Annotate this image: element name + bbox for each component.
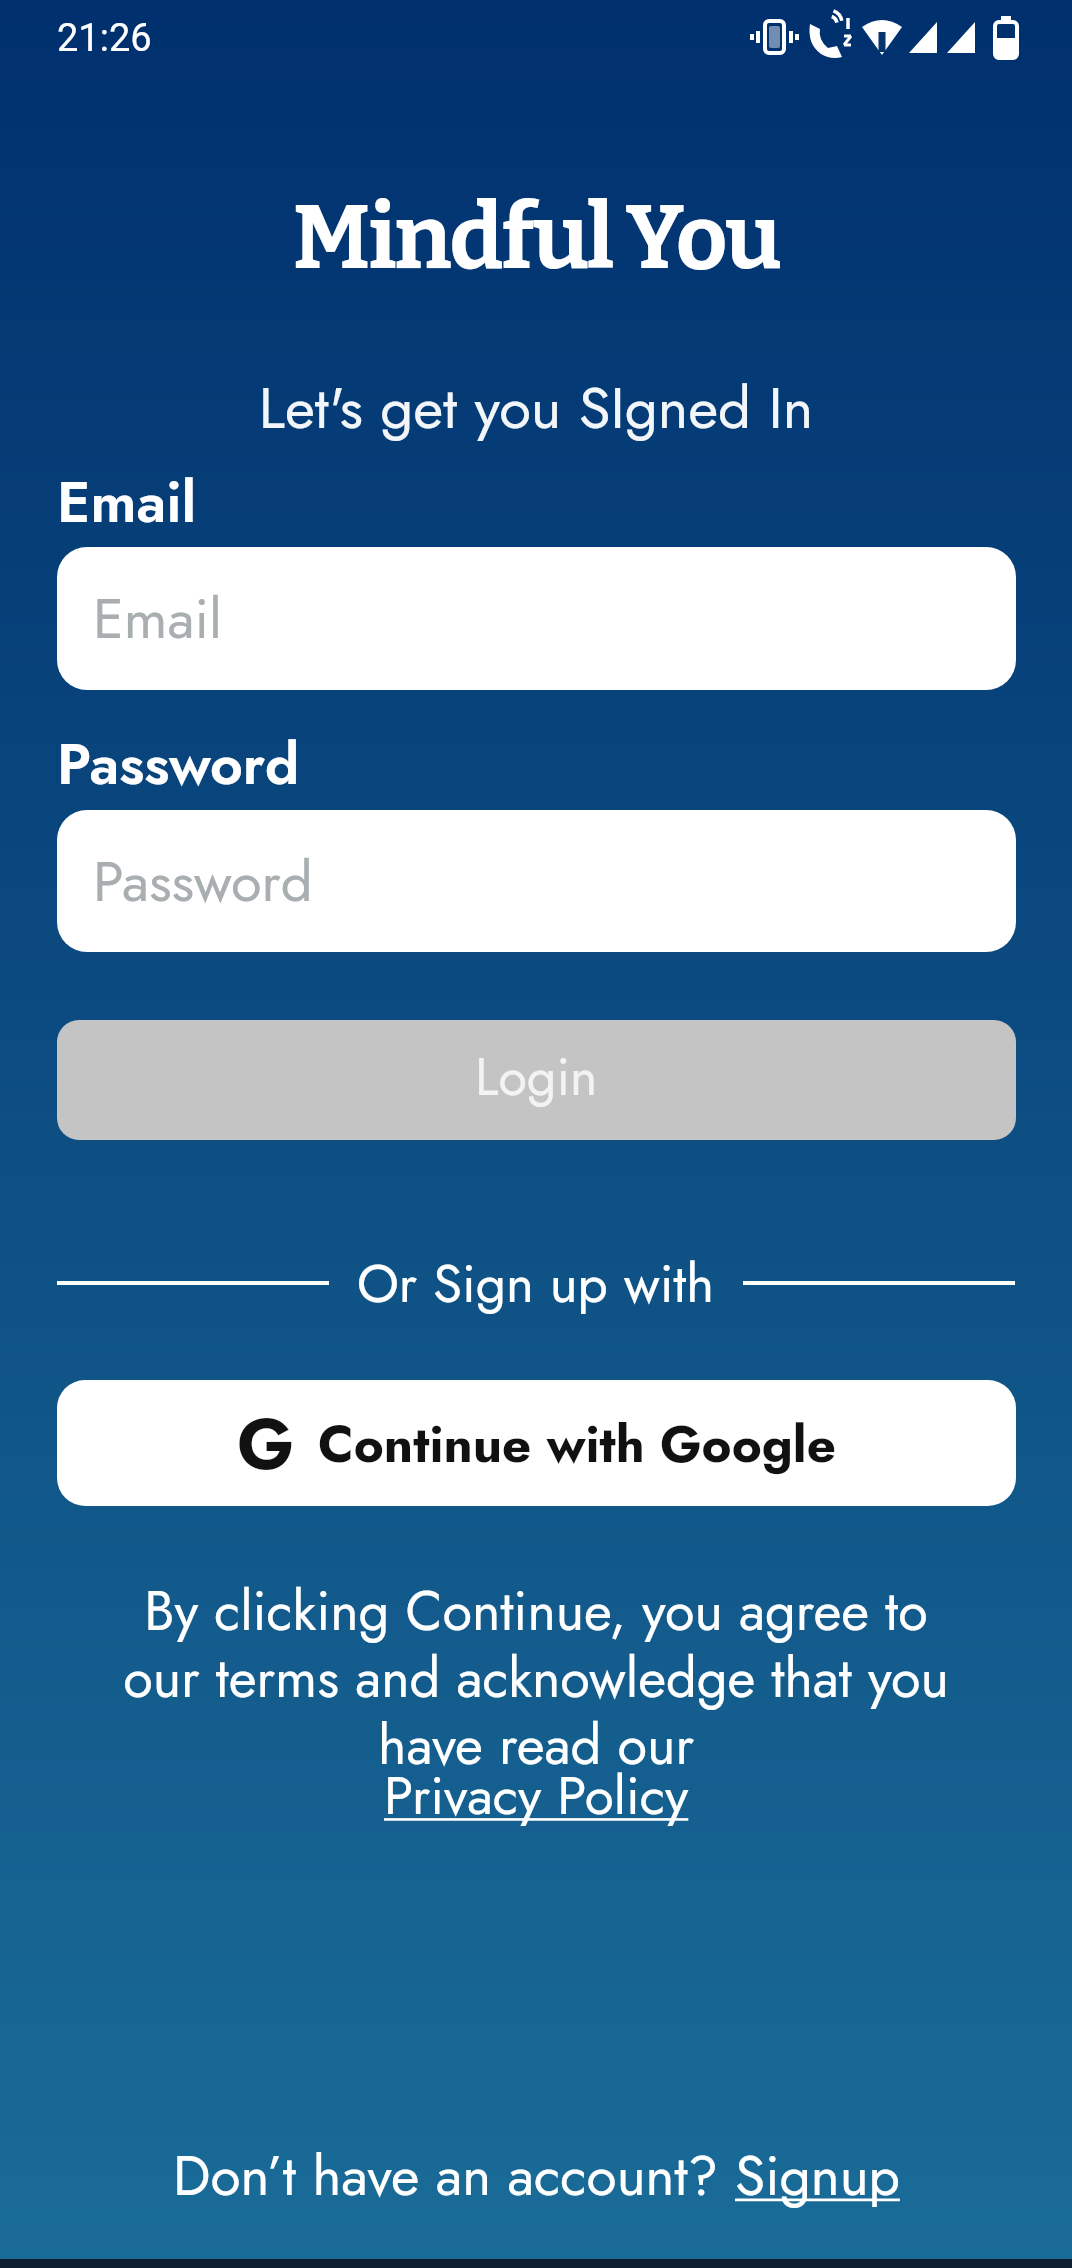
button[interactable]: Signup — [735, 2136, 900, 2215]
button[interactable]: Email — [57, 547, 1016, 690]
staticText: Continue with Google — [318, 1407, 836, 1481]
staticText: Let's get you SIgned In — [0, 366, 1072, 450]
staticText: Password — [57, 723, 300, 805]
button[interactable]: Privacy Policy — [384, 1757, 689, 1834]
staticText: Mindful You — [0, 185, 1072, 292]
staticText: Password — [93, 841, 313, 922]
staticText: G — [237, 1393, 294, 1494]
button[interactable]: Password — [57, 810, 1016, 952]
button[interactable]: G — [57, 1380, 1016, 1506]
button[interactable]: Login — [57, 1020, 1016, 1140]
staticText: Email — [57, 461, 197, 543]
staticText: Email — [93, 578, 222, 659]
staticText: Don’t have an account? — [173, 2136, 735, 2215]
staticText: Or Sign up with — [357, 1245, 715, 1322]
staticText: 21:26 — [57, 16, 152, 61]
staticText: By clicking Continue, you agree to our t… — [0, 1572, 1072, 1784]
staticText: Login — [475, 1039, 598, 1114]
